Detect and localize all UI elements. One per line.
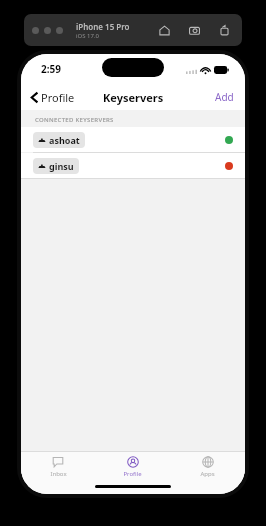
button[interactable]: Apps	[170, 452, 245, 482]
staticText: Add	[215, 90, 234, 104]
button[interactable]: ashoat	[21, 127, 245, 152]
staticText: ginsu	[49, 160, 74, 172]
staticText: CONNECTED KEYSERVERS	[35, 116, 114, 124]
button[interactable]: Inbox	[21, 452, 95, 482]
staticText: Profile	[123, 470, 142, 478]
button[interactable]: Screenshot	[184, 20, 204, 40]
staticText: 2:59	[41, 62, 61, 76]
button[interactable]: Rotate	[214, 20, 234, 40]
staticText: Keyservers	[103, 90, 164, 105]
staticText: Profile	[41, 90, 75, 105]
button[interactable]: ginsu	[21, 153, 245, 178]
staticText: Apps	[200, 470, 215, 478]
staticText: ashoat	[49, 134, 80, 146]
staticText: iOS 17.0	[76, 32, 99, 40]
button[interactable]: Profile	[27, 87, 79, 108]
button[interactable]: Profile	[95, 452, 170, 482]
staticText: iPhone 15 Pro	[76, 21, 130, 32]
button[interactable]: Add	[212, 87, 237, 107]
button[interactable]: Home	[154, 20, 174, 40]
staticText: Inbox	[50, 470, 67, 478]
